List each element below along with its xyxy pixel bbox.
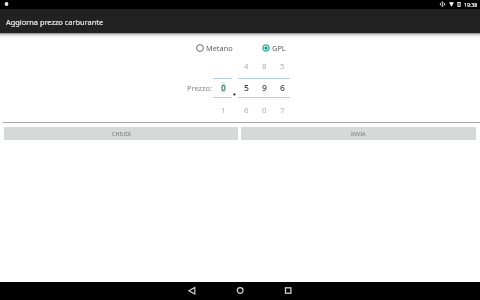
staticText: 19:38	[464, 1, 478, 8]
staticText: 9	[262, 82, 267, 94]
button[interactable]: INVIA	[241, 127, 476, 140]
staticText: INVIA	[351, 130, 366, 137]
button[interactable]: CHIUDI	[4, 127, 238, 140]
staticText: Prezzo:	[187, 83, 212, 93]
staticText: Aggiorna prezzo carburante	[6, 17, 104, 27]
staticText: 5	[244, 82, 249, 94]
staticText: 6	[280, 82, 285, 94]
button[interactable]: Back	[175, 282, 209, 300]
button[interactable]: Metano	[195, 41, 233, 55]
staticText: 0	[262, 105, 267, 116]
button[interactable]: Recents	[271, 282, 305, 300]
staticText: 4	[244, 61, 249, 72]
staticText: 7	[280, 105, 285, 116]
button[interactable]: 8	[255, 59, 273, 116]
staticText: CHIUDI	[112, 130, 131, 137]
staticText: 5	[280, 61, 285, 72]
staticText: Metano	[206, 43, 233, 53]
button[interactable]: 4	[237, 59, 255, 116]
button[interactable]: 0	[214, 59, 232, 116]
staticText: 8	[262, 61, 267, 72]
button[interactable]: GPL	[262, 41, 286, 55]
button[interactable]: 5	[273, 59, 291, 116]
staticText: 0	[221, 82, 226, 94]
button[interactable]: Home	[223, 282, 257, 300]
staticText: 6	[244, 105, 249, 116]
staticText: 1	[221, 105, 226, 116]
staticText: GPL	[272, 43, 286, 53]
